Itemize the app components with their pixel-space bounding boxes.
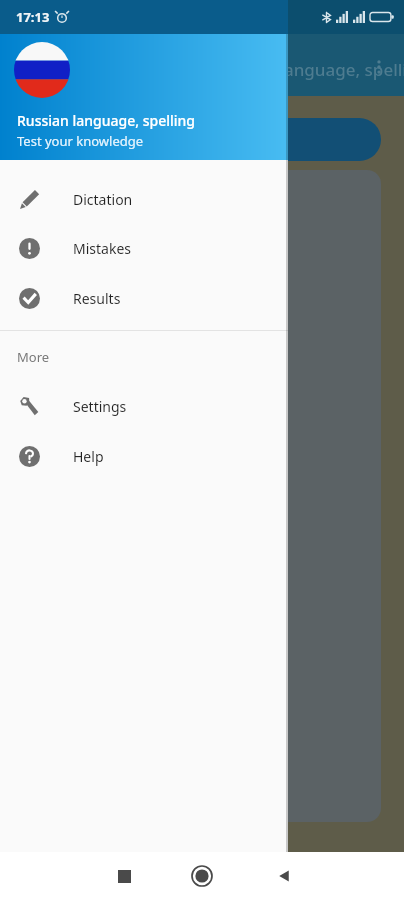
button[interactable]: Recent apps xyxy=(100,852,148,900)
button[interactable]: Help xyxy=(0,431,288,481)
button[interactable] xyxy=(22,118,381,161)
button[interactable]: Dictation xyxy=(0,174,288,224)
button[interactable]: Mistakes xyxy=(0,223,288,273)
staticText: Russian language, spelling xyxy=(212,58,404,81)
button[interactable]: More options xyxy=(366,54,392,80)
staticText: Test your knowledge xyxy=(17,132,144,150)
staticText: Mistakes xyxy=(73,239,132,258)
button[interactable]: Home xyxy=(178,852,226,900)
staticText: Results xyxy=(73,289,121,308)
staticText: Russian language, spelling xyxy=(17,111,195,130)
staticText: Tap the button above to choose xyxy=(40,232,241,250)
staticText: the application. xyxy=(40,441,139,459)
staticText: a dictation and then take the xyxy=(40,250,223,268)
staticText: Use Mistakes to find the xyxy=(40,301,193,319)
staticText: Help xyxy=(73,447,104,466)
staticText: More xyxy=(17,348,50,366)
staticText: Settings xyxy=(73,397,127,416)
button[interactable]: Back xyxy=(260,852,308,900)
button[interactable]: Settings xyxy=(0,381,288,431)
staticText: 17:13 xyxy=(16,8,50,26)
button[interactable]: Results xyxy=(0,273,288,323)
staticText: Open Results to see xyxy=(40,354,166,372)
staticText: Dictation xyxy=(73,190,133,209)
